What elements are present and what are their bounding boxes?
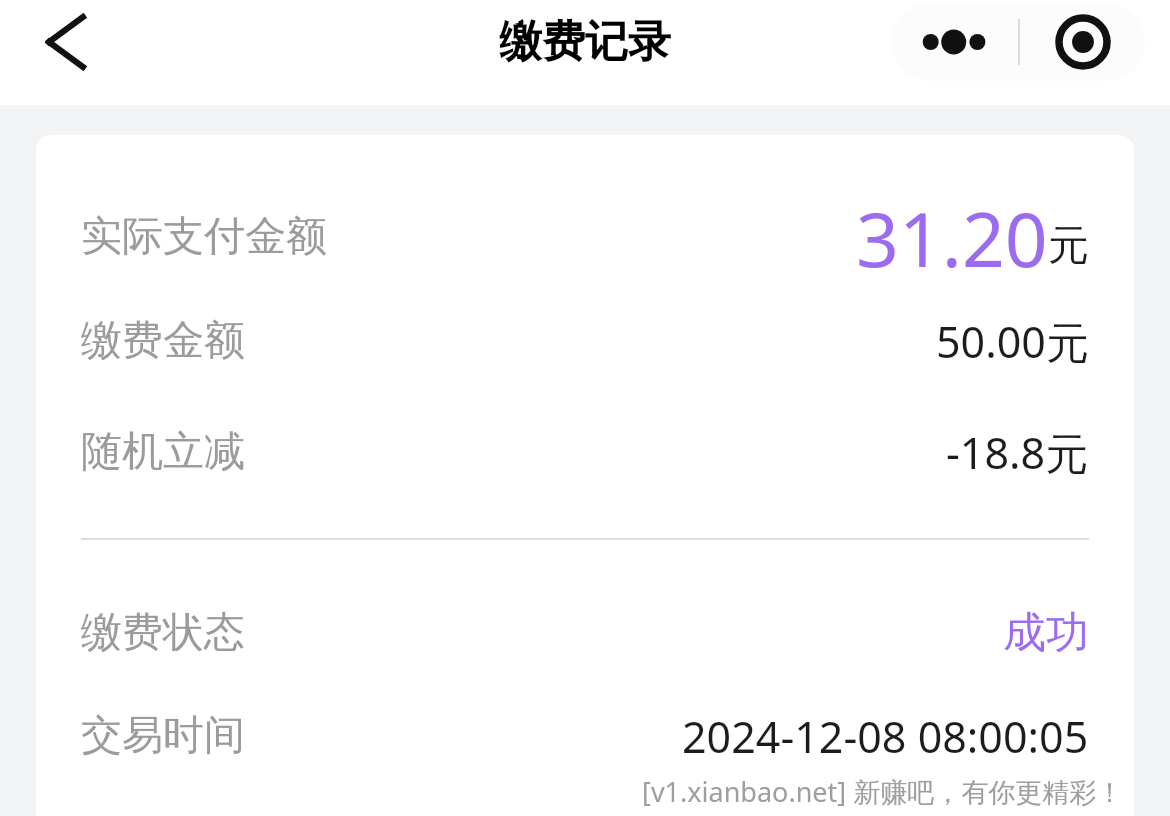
staticText: [v1.xianbao.net] 新赚吧，有你更精彩！ <box>642 773 1124 810</box>
staticText: 随机立减 <box>81 426 245 478</box>
staticText: 缴费金额 <box>81 315 245 367</box>
staticText: 缴费记录 <box>499 15 671 69</box>
button[interactable]: 缴费金额 <box>81 287 1089 395</box>
button[interactable]: 缴费状态 <box>81 587 1089 679</box>
button[interactable]: 实际支付金额 <box>81 187 1089 287</box>
staticText: 缴费状态 <box>81 607 245 659</box>
button[interactable]: Back <box>28 4 104 80</box>
staticText: 实际支付金额 <box>81 211 327 263</box>
button[interactable]: More options and close <box>891 3 1145 81</box>
staticText: 交易时间 <box>81 710 245 762</box>
staticText: -18.8元 <box>946 423 1089 482</box>
button[interactable]: 随机立减 <box>81 395 1089 509</box>
staticText: 50.00元 <box>936 312 1089 371</box>
staticText: 31.20 <box>856 187 1048 287</box>
staticText: 成功 <box>1003 606 1089 660</box>
staticText: 2024-12-08 08:00:05 <box>682 707 1089 766</box>
staticText: 元 <box>1048 220 1089 272</box>
button[interactable]: 交易时间 <box>81 679 1089 793</box>
